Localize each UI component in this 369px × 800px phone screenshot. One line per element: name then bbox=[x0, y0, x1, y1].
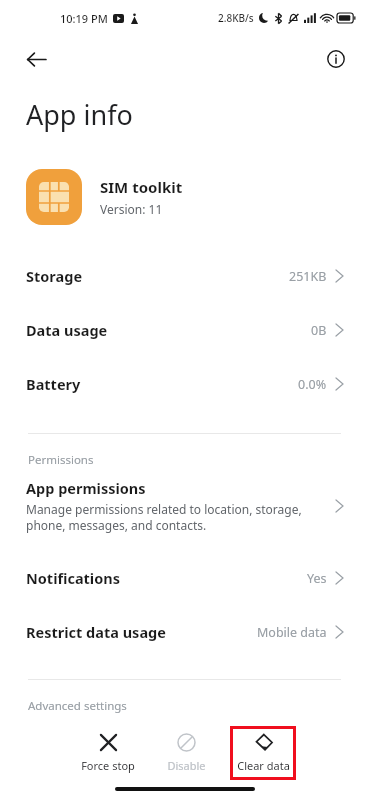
button[interactable]: Back bbox=[16, 39, 56, 79]
button[interactable]: Battery bbox=[0, 357, 369, 411]
staticText: 251KB bbox=[289, 268, 327, 285]
staticText: SIM toolkit bbox=[100, 177, 183, 197]
staticText: Storage bbox=[26, 266, 83, 286]
button[interactable]: Clear data bbox=[232, 728, 294, 778]
button[interactable]: App details bbox=[317, 40, 355, 78]
staticText: App permissions bbox=[26, 478, 146, 498]
staticText: Restrict data usage bbox=[26, 622, 166, 642]
staticText: Manage permissions related to location, … bbox=[26, 501, 324, 533]
button[interactable]: Disable bbox=[152, 726, 220, 780]
staticText: Yes bbox=[307, 570, 327, 587]
staticText: Battery bbox=[26, 374, 81, 394]
staticText: 10:19 PM bbox=[60, 11, 108, 26]
button[interactable]: Restrict data usage bbox=[0, 605, 369, 659]
button[interactable]: Force stop bbox=[74, 726, 142, 780]
staticText: Notifications bbox=[26, 568, 120, 588]
button[interactable]: Notifications bbox=[0, 551, 369, 605]
staticText: App info bbox=[26, 96, 133, 133]
staticText: Version: 11 bbox=[100, 201, 163, 217]
staticText: Mobile data bbox=[257, 624, 327, 641]
staticText: 2.8KB/s bbox=[218, 11, 254, 25]
staticText: Data usage bbox=[26, 320, 108, 340]
button[interactable]: Data usage bbox=[0, 303, 369, 357]
staticText: Advanced settings bbox=[28, 698, 127, 714]
staticText: Disable bbox=[167, 758, 206, 773]
staticText: 0B bbox=[311, 322, 327, 339]
button[interactable]: Storage bbox=[0, 249, 369, 303]
button[interactable]: App permissions bbox=[0, 474, 369, 537]
staticText: Permissions bbox=[28, 452, 94, 468]
staticText: 0.0% bbox=[298, 376, 327, 393]
staticText: Clear data bbox=[237, 758, 290, 773]
staticText: Force stop bbox=[81, 758, 135, 773]
